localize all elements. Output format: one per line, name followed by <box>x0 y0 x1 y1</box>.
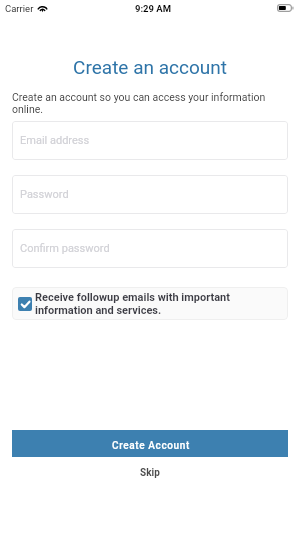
button[interactable]: Skip <box>0 464 300 482</box>
button[interactable]: Receive followup emails with important i… <box>12 287 288 320</box>
button[interactable]: Confirm password <box>12 229 288 268</box>
staticText: 9:29 AM <box>3 3 300 14</box>
other: Wi-Fi <box>37 4 48 12</box>
button[interactable]: Password <box>12 175 288 214</box>
staticText: Skip <box>140 467 160 479</box>
button[interactable]: Email address <box>12 121 288 160</box>
staticText: Create Account <box>112 440 190 452</box>
staticText: Receive followup emails with important i… <box>35 291 288 316</box>
staticText: Create an account <box>0 56 300 78</box>
staticText: Carrier <box>5 3 34 14</box>
staticText: Password <box>20 188 69 201</box>
other: Battery <box>277 4 294 12</box>
button[interactable]: Create Account <box>12 430 288 457</box>
staticText: Create an account so you can access your… <box>12 91 280 115</box>
staticText: Email address <box>20 134 90 147</box>
staticText: Confirm password <box>20 242 110 255</box>
